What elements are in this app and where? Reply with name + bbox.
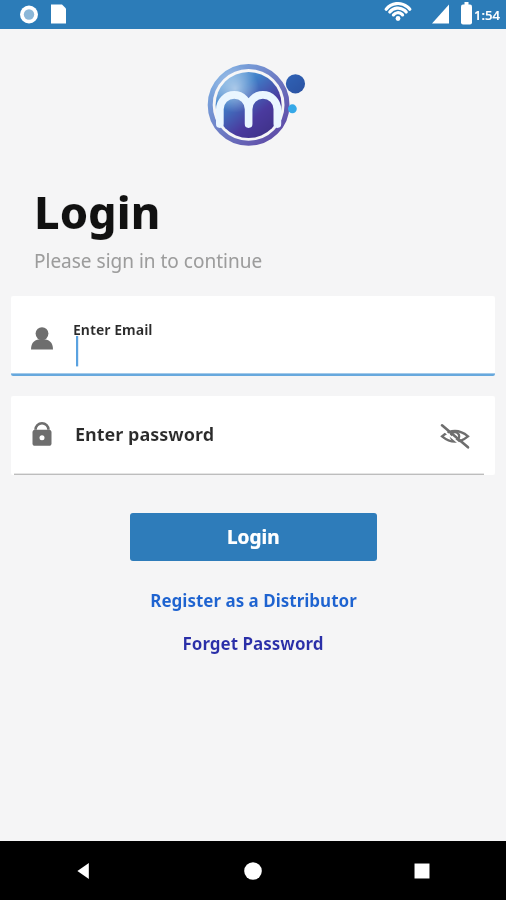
staticText: Enter password — [75, 422, 215, 447]
staticText: 1:54 — [474, 6, 500, 24]
button[interactable]: Enter password — [11, 396, 495, 475]
button[interactable]: Login — [130, 513, 377, 561]
button[interactable]: Forget Password — [182, 632, 324, 655]
button[interactable]: Enter Email — [11, 296, 495, 376]
staticText: Forget Password — [182, 632, 324, 655]
button[interactable]: Recent apps — [394, 843, 450, 899]
staticText: Please sign in to continue — [34, 248, 263, 274]
staticText: Register as a Distributor — [150, 589, 357, 612]
button[interactable]: Register as a Distributor — [150, 589, 357, 612]
staticText: Login — [34, 181, 161, 242]
button[interactable]: Home — [225, 843, 281, 899]
button[interactable]: Back — [56, 843, 112, 899]
staticText: Enter Email — [73, 320, 153, 339]
staticText: Login — [227, 524, 280, 550]
